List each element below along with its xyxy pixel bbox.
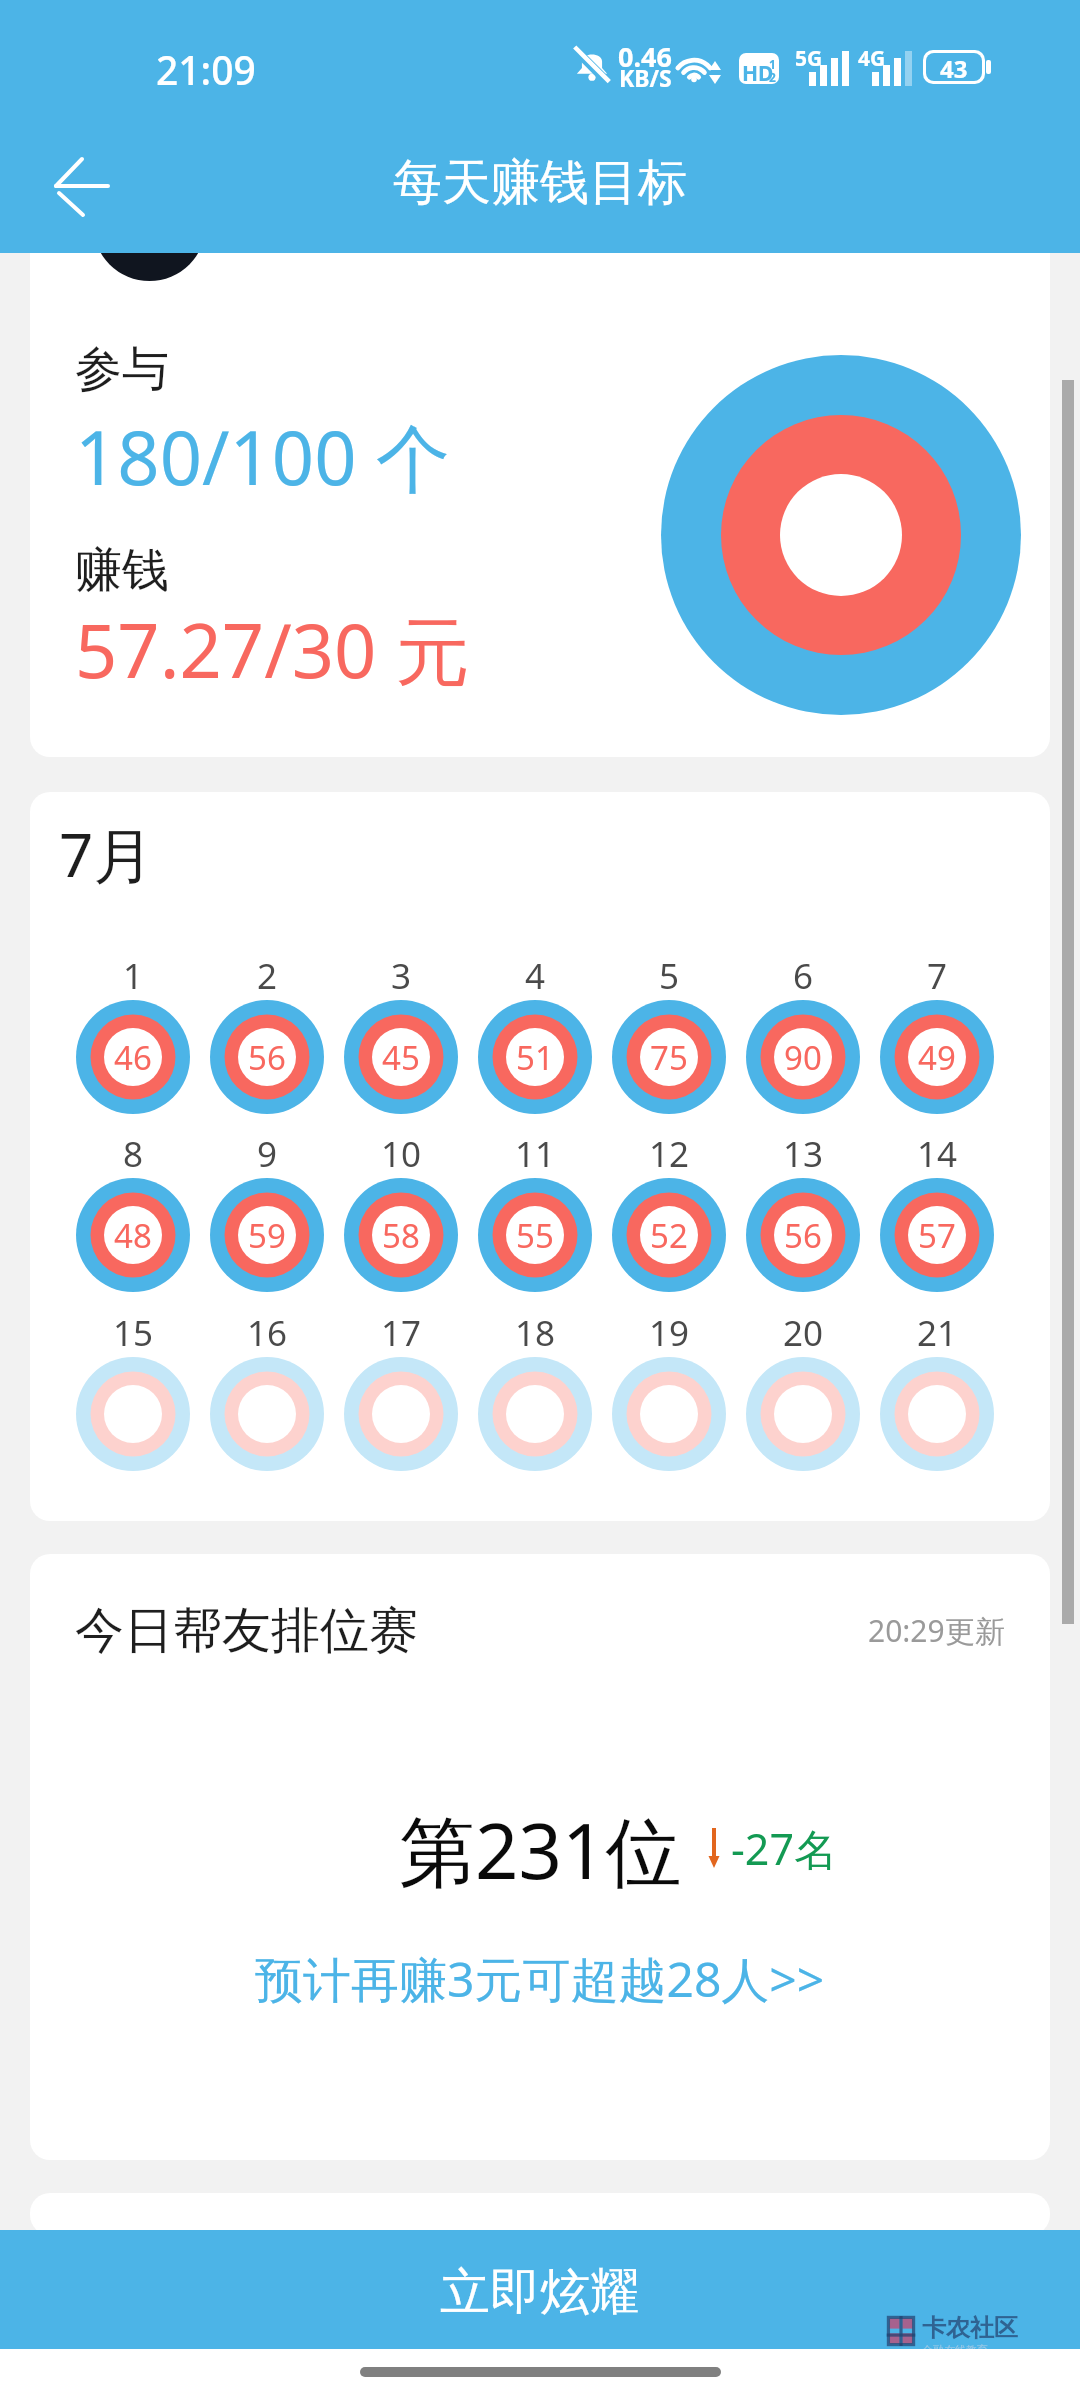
button[interactable]: 9: [210, 1130, 324, 1292]
staticText: 90: [784, 1035, 822, 1080]
button[interactable]: 5: [612, 952, 726, 1114]
staticText: 卡农社区: [922, 2313, 1018, 2343]
staticText: 56: [784, 1213, 822, 1258]
staticText: 12: [649, 1130, 690, 1176]
staticText: 预计再赚3元可超越28人>>: [255, 1946, 825, 2012]
button[interactable]: 17: [344, 1309, 458, 1471]
button[interactable]: 6: [746, 952, 860, 1114]
staticText: 10: [381, 1130, 422, 1176]
staticText: 16: [247, 1309, 288, 1355]
button[interactable]: Back: [40, 144, 124, 228]
staticText: 45: [382, 1035, 420, 1080]
staticText: 59: [248, 1213, 286, 1258]
staticText: 7月: [59, 813, 154, 895]
button[interactable]: 11: [478, 1130, 592, 1292]
staticText: 46: [114, 1035, 152, 1080]
staticText: 18: [515, 1309, 556, 1355]
staticText: 3: [391, 952, 412, 998]
staticText: 赚钱: [75, 541, 169, 600]
staticText: 8: [123, 1130, 144, 1176]
button[interactable]: 4: [478, 952, 592, 1114]
staticText: 21: [917, 1309, 958, 1355]
staticText: 7: [927, 952, 948, 998]
staticText: 17: [381, 1309, 422, 1355]
staticText: 55: [516, 1213, 554, 1258]
staticText: 20: [783, 1309, 824, 1355]
staticText: 56: [248, 1035, 286, 1080]
staticText: 今日帮友排位赛: [75, 1600, 418, 1662]
button[interactable]: 10: [344, 1130, 458, 1292]
staticText: 52: [650, 1213, 688, 1258]
button[interactable]: 20: [746, 1309, 860, 1471]
staticText: 11: [515, 1130, 556, 1176]
staticText: 立即炫耀: [440, 2261, 640, 2324]
staticText: 5G: [795, 44, 823, 73]
staticText: 4G: [858, 44, 886, 73]
button[interactable]: 13: [746, 1130, 860, 1292]
staticText: 57.27/30 元: [75, 599, 470, 700]
staticText: 57: [918, 1213, 956, 1258]
button[interactable]: 立即炫耀: [0, 2230, 1080, 2349]
staticText: KB/S: [619, 62, 672, 93]
staticText: 1: [123, 952, 144, 998]
button[interactable]: 21: [880, 1309, 994, 1471]
button[interactable]: 2: [210, 952, 324, 1114]
staticText: 每天赚钱目标: [393, 152, 687, 214]
button[interactable]: 14: [880, 1130, 994, 1292]
staticText: 43: [940, 53, 968, 80]
staticText: 19: [649, 1309, 690, 1355]
staticText: 2: [257, 952, 278, 998]
staticText: -27名: [731, 1819, 838, 1878]
button[interactable]: 15: [76, 1309, 190, 1471]
staticText: 6: [793, 952, 814, 998]
button[interactable]: 19: [612, 1309, 726, 1471]
staticText: 75: [650, 1035, 688, 1080]
staticText: 48: [114, 1213, 152, 1258]
staticText: 14: [917, 1130, 958, 1176]
staticText: 49: [918, 1035, 956, 1080]
staticText: 51: [516, 1035, 554, 1080]
staticText: 金融在线教育: [922, 2343, 988, 2349]
staticText: 0.46: [618, 38, 672, 75]
staticText: 20:29更新: [868, 1610, 1005, 1651]
staticText: 4: [525, 952, 546, 998]
staticText: 180/100 个: [75, 406, 450, 507]
staticText: 5: [659, 952, 680, 998]
staticText: 2: [769, 69, 776, 84]
staticText: 9: [257, 1130, 278, 1176]
staticText: 参与: [75, 340, 169, 399]
button[interactable]: 8: [76, 1130, 190, 1292]
staticText: 15: [113, 1309, 154, 1355]
button[interactable]: 18: [478, 1309, 592, 1471]
button[interactable]: 3: [344, 952, 458, 1114]
button[interactable]: 1: [76, 952, 190, 1114]
staticText: 21:09: [156, 43, 256, 96]
button[interactable]: 12: [612, 1130, 726, 1292]
staticText: 13: [783, 1130, 824, 1176]
button[interactable]: 16: [210, 1309, 324, 1471]
staticText: 1: [769, 56, 776, 72]
button[interactable]: 7: [880, 952, 994, 1114]
staticText: 第231位: [399, 1798, 682, 1902]
staticText: 58: [382, 1213, 420, 1258]
staticText: HD: [742, 59, 774, 84]
button[interactable]: 预计再赚3元可超越28人>>: [30, 1946, 1050, 2012]
